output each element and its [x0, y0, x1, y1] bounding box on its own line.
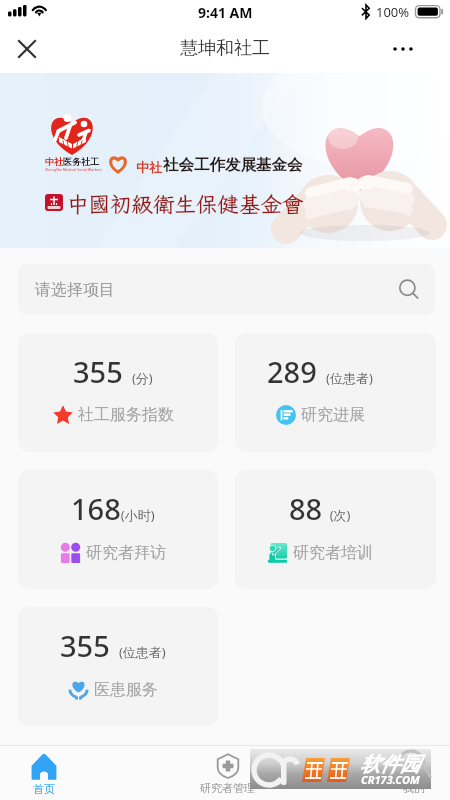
staticText: 研究进展 — [301, 405, 365, 425]
button[interactable]: 首页 — [10, 746, 78, 800]
staticText: ZhongShe Medical Social Workers — [45, 167, 102, 172]
button[interactable]: 中社 — [0, 73, 450, 248]
staticText: 100% — [376, 3, 410, 21]
staticText: 我的 — [403, 781, 425, 795]
staticText: 社工服务指数 — [78, 405, 174, 425]
staticText: 中社 — [45, 156, 63, 167]
staticText: 软件园 — [360, 752, 420, 777]
button[interactable]: Close — [3, 25, 51, 73]
staticText: 研究者拜访 — [86, 543, 166, 563]
button[interactable]: 355 (分) — [18, 333, 218, 452]
button[interactable]: 355 (位患者) — [18, 607, 218, 726]
button[interactable]: 168(小时) — [18, 470, 218, 589]
staticText: 355 (位患者) — [60, 626, 166, 665]
staticText: 慧坤和社工 — [180, 37, 270, 60]
staticText: 168(小时) — [71, 489, 155, 528]
staticText: 医患服务 — [94, 680, 158, 700]
staticText: 9:41 AM — [198, 3, 253, 22]
staticText: 首页 — [33, 782, 55, 796]
button[interactable]: 研究者管理 — [193, 746, 261, 800]
staticText: 中國初級衛生保健基金會 — [67, 190, 304, 218]
button[interactable]: 请选择项目 — [18, 264, 435, 315]
staticText: 355 (分) — [73, 352, 153, 391]
staticText: 社会工作发展基金会 — [163, 155, 303, 175]
staticText: 研究者管理 — [200, 781, 255, 795]
staticText: 中社 — [136, 159, 162, 175]
staticText: 88 (次) — [289, 489, 351, 528]
button[interactable]: 我的 — [380, 746, 448, 800]
button[interactable]: 88 (次) — [235, 470, 436, 589]
button[interactable]: More options — [379, 25, 427, 73]
staticText: CR173.COM — [361, 772, 420, 787]
staticText: 医务社工 — [63, 156, 99, 167]
staticText: 289 (位患者) — [267, 352, 373, 391]
staticText: 请选择项目 — [35, 280, 115, 300]
staticText: 研究者培训 — [293, 543, 373, 563]
other: Search — [398, 279, 420, 301]
button[interactable]: 289 (位患者) — [235, 333, 436, 452]
